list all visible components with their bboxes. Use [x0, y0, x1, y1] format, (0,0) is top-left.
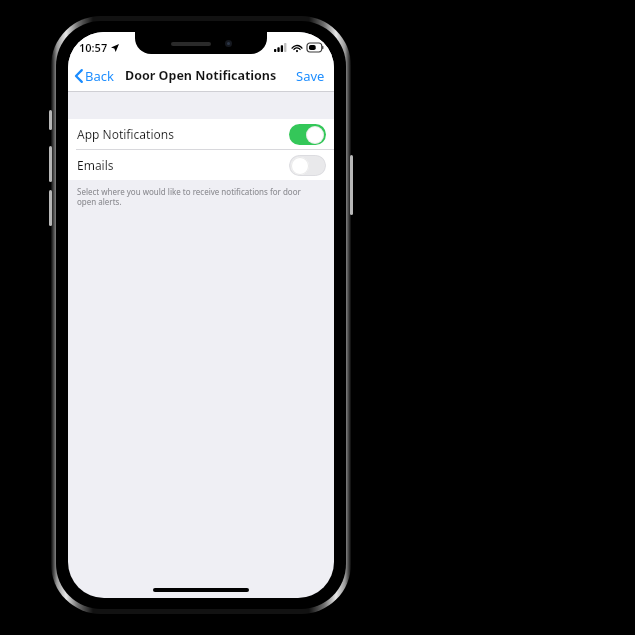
button[interactable]: App Notifications on	[289, 124, 326, 145]
staticText: App Notifications	[77, 126, 289, 142]
staticText: 10:57	[79, 40, 108, 55]
button[interactable]: Emails off	[289, 155, 326, 176]
staticText: Emails	[77, 157, 289, 173]
staticText: Door Open Notifications	[125, 67, 277, 84]
button[interactable]: App Notifications	[68, 119, 334, 149]
staticText: Select where you would like to receive n…	[77, 186, 320, 207]
staticText: Back	[85, 67, 114, 85]
button[interactable]: Back	[68, 60, 120, 91]
button[interactable]: Save	[287, 60, 334, 91]
button[interactable]: Emails	[68, 150, 334, 180]
staticText: Save	[296, 67, 325, 85]
